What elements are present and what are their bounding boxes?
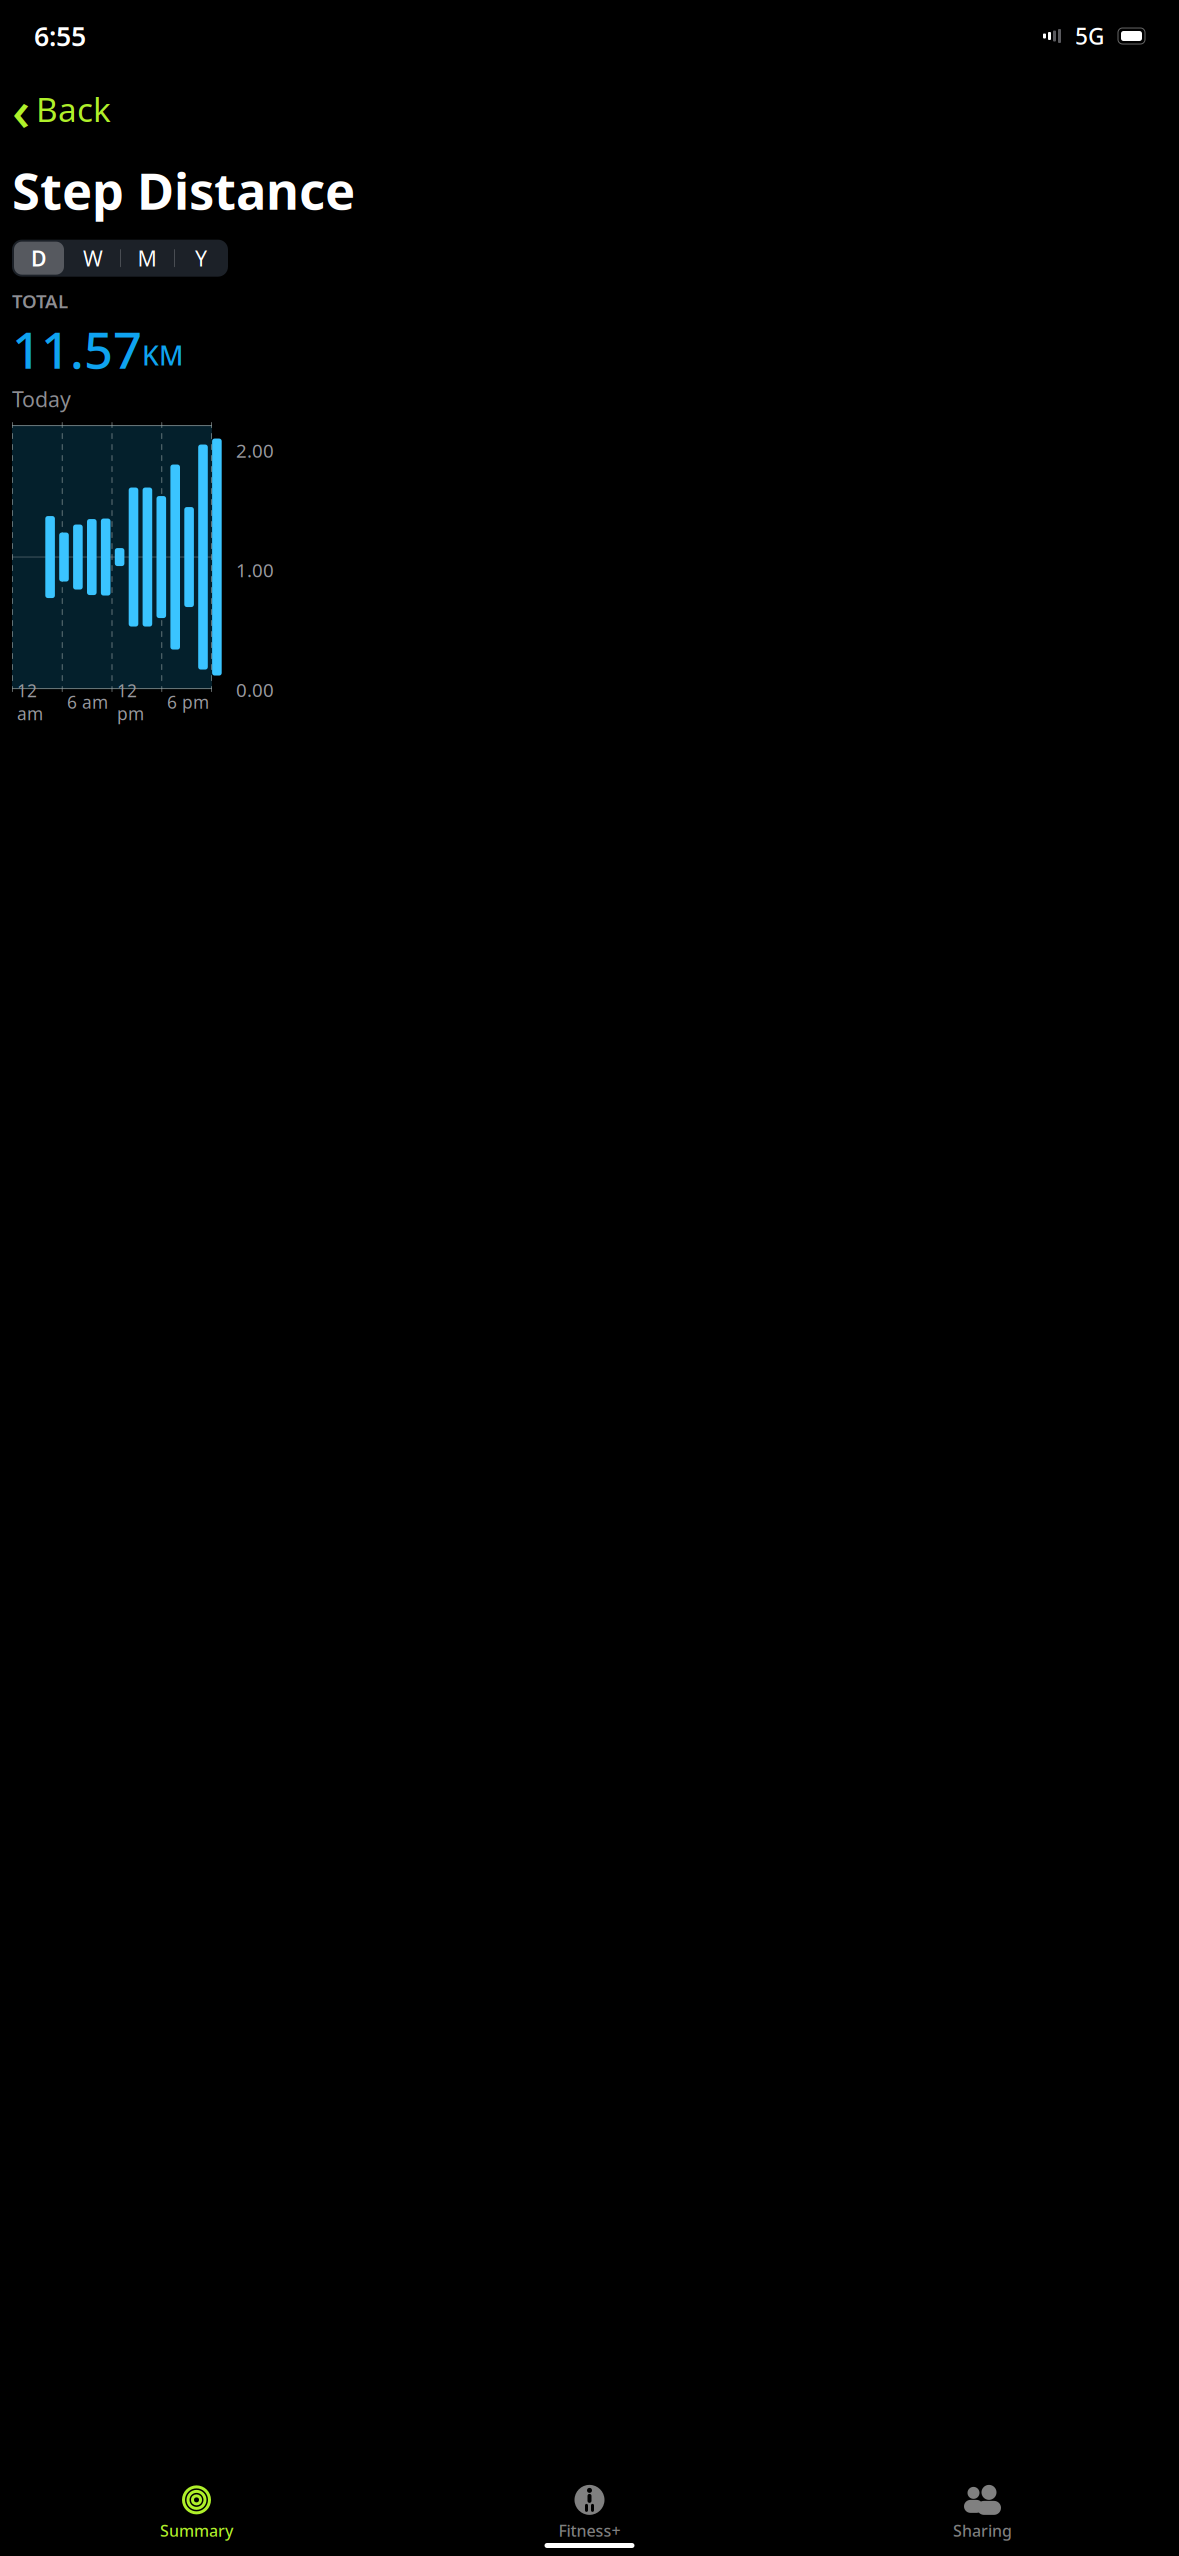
staticText: 5G xyxy=(1075,21,1104,51)
staticText: Back xyxy=(36,87,111,131)
staticText: Fitness+ xyxy=(558,2520,620,2541)
staticText: 12 am xyxy=(17,679,43,725)
staticText: 6:55 xyxy=(34,18,86,54)
staticText: 6 am xyxy=(67,690,108,713)
staticText: 1.00 xyxy=(236,558,274,582)
staticText: W xyxy=(83,244,103,272)
button[interactable]: Fitness Plus xyxy=(393,2479,786,2547)
button[interactable]: Sharing xyxy=(786,2479,1179,2547)
staticText: Sharing xyxy=(953,2520,1012,2541)
staticText: 12 pm xyxy=(117,679,144,725)
staticText: 2.00 xyxy=(236,438,274,463)
staticText: 11.57 xyxy=(12,315,142,383)
button[interactable]: Y xyxy=(174,240,228,277)
staticText: Step Distance xyxy=(12,156,355,224)
staticText: ‹ xyxy=(12,72,30,146)
staticText: 6 pm xyxy=(167,690,209,713)
button[interactable]: ‹ xyxy=(0,70,123,148)
staticText: Summary xyxy=(160,2520,233,2541)
staticText: KM xyxy=(142,337,183,373)
staticText: 0.00 xyxy=(236,677,274,702)
staticText: TOTAL xyxy=(12,289,68,313)
staticText: Today xyxy=(12,385,71,413)
button[interactable]: D xyxy=(12,240,66,277)
staticText: M xyxy=(137,244,156,272)
button[interactable]: M xyxy=(120,240,174,277)
button[interactable]: Summary xyxy=(0,2479,393,2547)
button[interactable]: W xyxy=(66,240,120,277)
staticText: D xyxy=(31,244,47,272)
staticText: Y xyxy=(195,244,207,272)
